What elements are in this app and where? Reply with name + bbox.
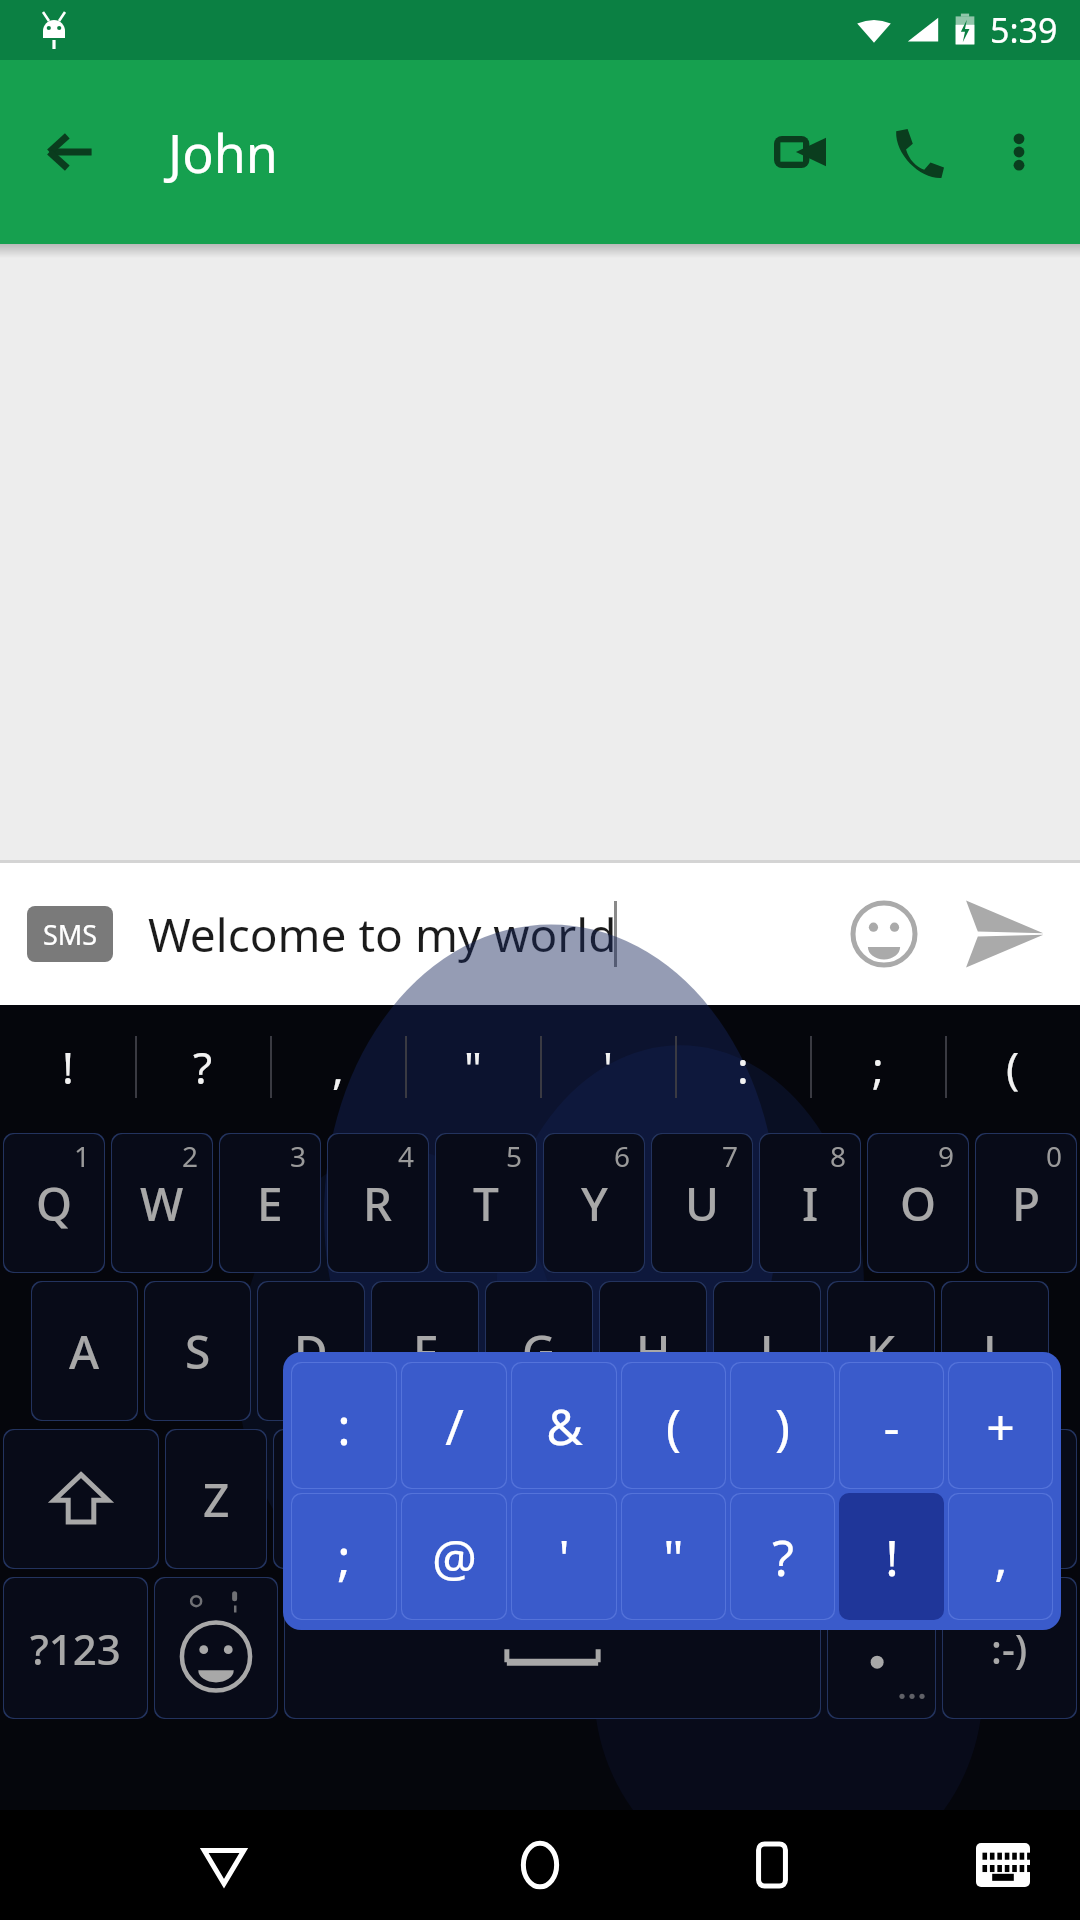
staticText: 6 [614,1137,631,1175]
staticText: :-) [991,1621,1028,1675]
button[interactable]: ? [730,1493,835,1620]
staticText: H [636,1320,671,1383]
staticText: K [866,1320,896,1383]
staticText: E [257,1172,283,1235]
staticText: T [473,1172,499,1235]
button[interactable]: F [371,1281,479,1421]
staticText: ' [558,1523,570,1591]
button[interactable]: ! [0,1005,135,1129]
staticText: 9 [938,1137,955,1175]
button[interactable]: ! [839,1493,944,1620]
button[interactable]: Call [870,104,966,200]
button[interactable]: J [713,1281,821,1421]
button[interactable] [921,1429,1077,1569]
staticText: ? [772,1523,794,1591]
staticText: ? [193,1037,213,1097]
button[interactable]: Back [178,1819,270,1911]
button[interactable]: N [705,1429,807,1569]
button[interactable]: U [651,1133,753,1273]
button[interactable]: M [813,1429,915,1569]
button[interactable]: T [435,1133,537,1273]
button[interactable]: Insert emoji [836,886,932,982]
button[interactable]: G [485,1281,593,1421]
staticText: , [332,1037,344,1097]
button[interactable]: ; [291,1493,397,1620]
button[interactable]: Recent apps [726,1819,818,1911]
button[interactable]: ' [540,1005,675,1129]
button[interactable]: W [111,1133,213,1273]
button[interactable]: I [759,1133,861,1273]
button[interactable]: ( [945,1005,1080,1129]
button[interactable]: - [839,1362,944,1489]
staticText: Y [581,1172,608,1235]
staticText: 1 [74,1137,91,1175]
button[interactable] [154,1577,278,1719]
button[interactable]: V [489,1429,591,1569]
staticText: I [802,1172,819,1235]
button[interactable]: Send [948,879,1058,989]
staticText: O [900,1172,937,1235]
staticText: John [168,117,278,188]
staticText: ( [666,1392,681,1460]
button[interactable]: ; [810,1005,945,1129]
button[interactable]: P [975,1133,1077,1273]
staticText: Welcome to my world [148,903,617,966]
button[interactable]: Y [543,1133,645,1273]
button[interactable]: More options [976,109,1062,195]
button[interactable]: E [219,1133,321,1273]
button[interactable]: ) [730,1362,835,1489]
button[interactable]: Q [3,1133,105,1273]
button[interactable]: , [948,1493,1053,1620]
button[interactable]: A [31,1281,138,1421]
staticText: & [546,1392,583,1460]
staticText: " [464,1037,482,1097]
button[interactable]: " [405,1005,540,1129]
button[interactable] [827,1577,936,1719]
button[interactable]: :-) [942,1577,1077,1719]
button[interactable]: + [948,1362,1053,1489]
button[interactable]: Switch input method [960,1822,1046,1908]
staticText: U [685,1172,719,1235]
button[interactable]: K [827,1281,935,1421]
staticText: J [760,1320,774,1383]
button[interactable]: X [273,1429,375,1569]
button[interactable]: L [941,1281,1049,1421]
button[interactable]: " [621,1493,726,1620]
button[interactable]: Z [165,1429,267,1569]
button[interactable]: Video call [752,104,848,200]
staticText: A [69,1320,100,1383]
button[interactable]: R [327,1133,429,1273]
staticText: ' [603,1037,613,1097]
staticText: 0 [1046,1137,1063,1175]
button[interactable]: : [291,1362,397,1489]
button[interactable]: , [270,1005,405,1129]
staticText: C [417,1468,447,1531]
button[interactable] [284,1577,821,1719]
button[interactable]: S [144,1281,251,1421]
button[interactable]: SMS [27,906,113,962]
button[interactable]: / [401,1362,507,1489]
staticText: V [526,1468,555,1531]
button[interactable]: & [511,1362,617,1489]
button[interactable]: @ [401,1493,507,1620]
button[interactable]: ? [135,1005,270,1129]
staticText: ?123 [30,1620,121,1677]
button[interactable]: B [597,1429,699,1569]
button[interactable]: Home [494,1819,586,1911]
button[interactable]: Back [22,104,118,200]
staticText: : [737,1037,749,1097]
staticText: D [294,1320,328,1383]
staticText: 5 [506,1137,523,1175]
staticText: @ [432,1523,477,1591]
button[interactable]: ' [511,1493,617,1620]
button[interactable]: O [867,1133,969,1273]
button[interactable]: ?123 [3,1577,148,1719]
button[interactable]: H [599,1281,707,1421]
button[interactable] [3,1429,159,1569]
button[interactable]: : [675,1005,810,1129]
staticText: + [986,1392,1015,1460]
staticText: , [994,1523,1008,1591]
button[interactable]: D [257,1281,365,1421]
button[interactable]: ( [621,1362,726,1489]
button[interactable]: C [381,1429,483,1569]
